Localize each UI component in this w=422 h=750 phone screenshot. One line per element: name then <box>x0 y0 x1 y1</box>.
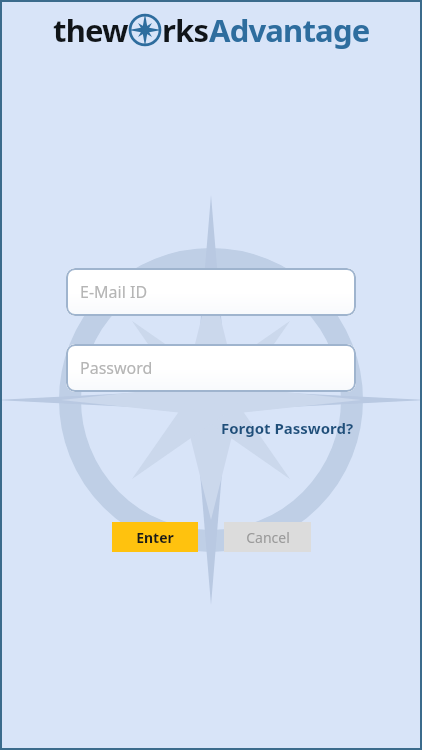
staticText: Forgot Password? <box>221 418 354 438</box>
staticText: E-Mail ID <box>80 281 148 303</box>
button[interactable]: Enter <box>112 522 198 552</box>
button[interactable]: E-Mail ID <box>66 268 356 316</box>
staticText: Cancel <box>246 528 290 547</box>
staticText: thew <box>53 9 128 51</box>
staticText: Password <box>80 357 153 379</box>
staticText: Advantage <box>209 9 370 51</box>
staticText: Enter <box>136 528 174 547</box>
button[interactable]: Forgot Password? <box>219 414 356 442</box>
staticText: rks <box>162 9 209 51</box>
button[interactable]: Password <box>66 344 356 392</box>
button[interactable]: Cancel <box>224 522 311 552</box>
